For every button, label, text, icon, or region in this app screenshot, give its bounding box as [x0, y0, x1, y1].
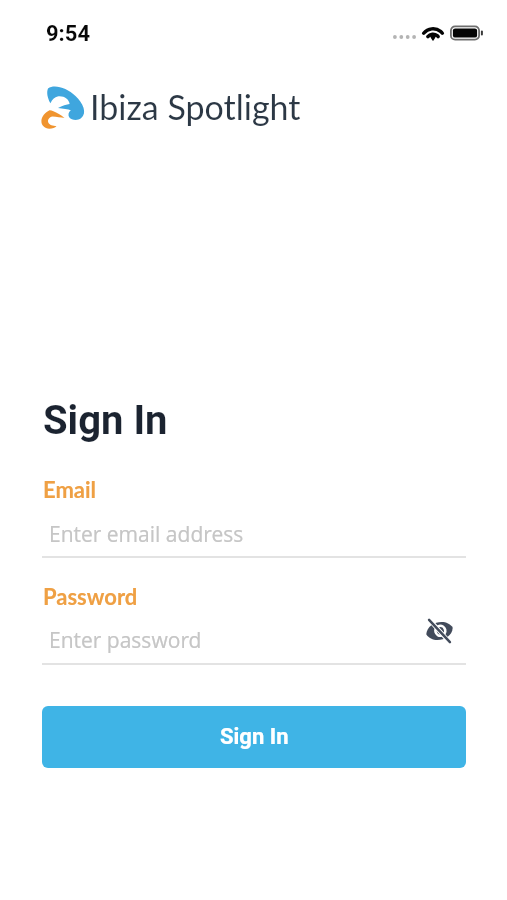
button[interactable]: Password — [43, 583, 138, 609]
staticText: Password — [43, 583, 138, 609]
button[interactable]: Sign In — [42, 706, 466, 768]
staticText: Ibiza Spotlight — [90, 86, 301, 127]
button[interactable]: Show password — [418, 610, 460, 652]
staticText: Enter email address — [49, 520, 244, 549]
staticText: Sign In — [43, 397, 168, 444]
staticText: Enter password — [49, 626, 202, 655]
staticText: Sign In — [220, 724, 289, 750]
staticText: 9:54 — [46, 21, 91, 47]
staticText: Email — [43, 476, 97, 502]
button[interactable]: Email — [43, 476, 97, 502]
